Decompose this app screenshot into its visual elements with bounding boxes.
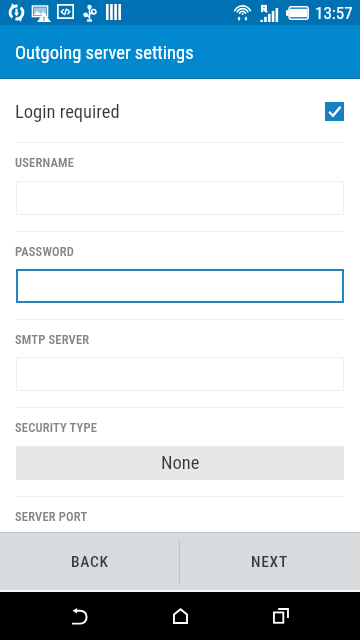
staticText: 13:57 (315, 3, 353, 23)
staticText: USERNAME (15, 155, 75, 170)
staticText: NEXT (251, 553, 288, 571)
button[interactable]: Home (140, 592, 220, 640)
staticText: BACK (71, 553, 109, 571)
button[interactable]: Login required (0, 80, 360, 142)
button[interactable]: Recent apps (240, 592, 320, 640)
button[interactable]: None (16, 446, 344, 480)
staticText: SECURITY TYPE (15, 420, 98, 435)
staticText: SERVER PORT (15, 509, 88, 524)
button[interactable] (16, 181, 344, 215)
staticText: PASSWORD (15, 244, 75, 259)
button[interactable] (16, 269, 344, 303)
staticText: Outgoing server settings (15, 42, 194, 64)
button[interactable]: NEXT (179, 532, 360, 591)
button[interactable]: BACK (0, 532, 179, 591)
staticText: None (161, 452, 200, 474)
staticText: SMTP SERVER (15, 332, 90, 347)
button[interactable] (16, 357, 344, 391)
button[interactable]: Back (40, 592, 120, 640)
staticText: Login required (15, 101, 120, 123)
